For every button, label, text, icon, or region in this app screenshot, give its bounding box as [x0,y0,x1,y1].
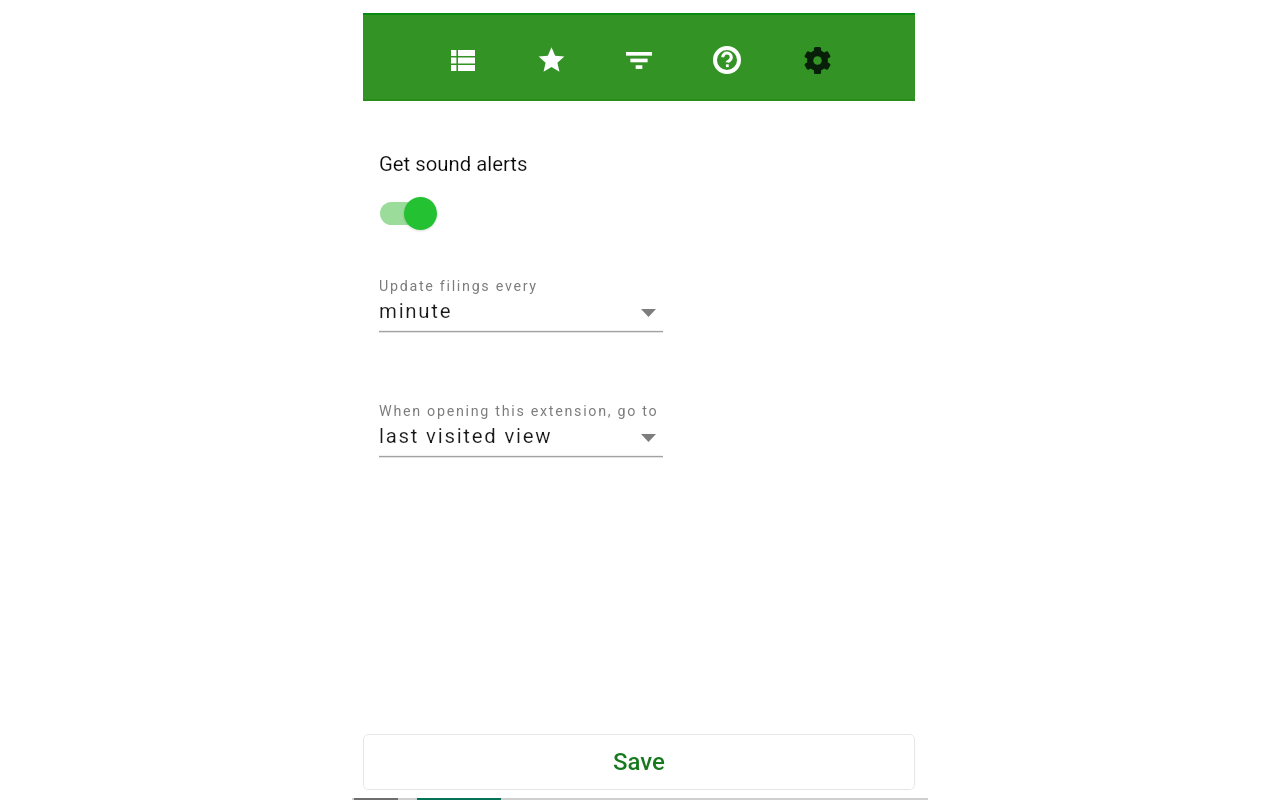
button[interactable]: Filter [595,18,683,102]
staticText: When opening this extension, go to [379,403,659,420]
staticText: Save [613,748,665,776]
staticText: Get sound alerts [379,152,528,176]
button[interactable]: When opening this extension, go to [379,403,663,465]
staticText: last visited view [379,424,553,448]
button[interactable]: List view [419,18,507,102]
button[interactable]: Update filings every [379,278,663,340]
button[interactable]: Save [363,734,915,790]
button[interactable]: Favourites [507,18,595,102]
staticText: minute [379,299,453,323]
staticText: Update filings every [379,278,538,295]
button[interactable]: Help [683,18,771,102]
button[interactable]: Get sound alerts toggle [375,195,439,231]
button[interactable]: Settings [771,18,859,102]
